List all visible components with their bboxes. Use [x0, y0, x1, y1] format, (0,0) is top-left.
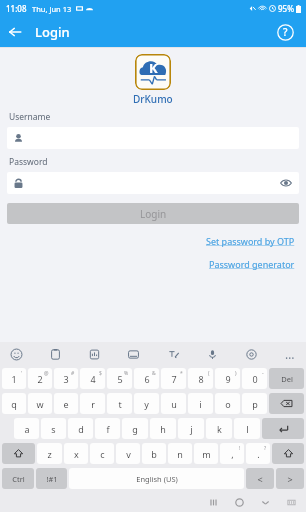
button[interactable]: 3 — [54, 368, 78, 389]
button[interactable]: < — [246, 468, 274, 489]
button[interactable]: d — [68, 418, 93, 439]
staticText: 5 — [117, 373, 123, 385]
button[interactable]: Ctrl — [2, 468, 34, 489]
button[interactable]: h — [150, 418, 176, 439]
staticText: r — [91, 398, 95, 410]
staticText: i — [199, 398, 202, 410]
staticText: # — [71, 370, 75, 377]
staticText: > — [287, 473, 293, 485]
button[interactable] — [262, 418, 304, 439]
button[interactable]: v — [116, 443, 140, 464]
button[interactable]: English (US) — [69, 468, 244, 489]
staticText: v — [126, 448, 131, 460]
staticText: % — [124, 370, 129, 377]
staticText: g — [132, 423, 138, 435]
button[interactable]: Hide keyboard — [252, 493, 278, 512]
staticText: 1 — [11, 373, 17, 385]
button[interactable]: r — [80, 393, 105, 414]
button[interactable]: Set password by OTP — [204, 233, 297, 249]
staticText: t — [118, 398, 122, 410]
button[interactable] — [7, 127, 299, 149]
button[interactable]: Voice input — [204, 346, 220, 362]
button[interactable]: i — [188, 393, 213, 414]
button[interactable]: x — [64, 443, 88, 464]
button[interactable]: Keyboard — [278, 493, 304, 512]
button[interactable]: 6 — [134, 368, 159, 389]
button[interactable]: l — [234, 418, 260, 439]
button[interactable]: Emoji — [8, 346, 24, 362]
button[interactable]: Del — [269, 368, 304, 389]
staticText: 6 — [144, 373, 150, 385]
button[interactable] — [269, 393, 304, 414]
staticText: 7 — [171, 373, 177, 385]
staticText: 3 — [63, 373, 69, 385]
button[interactable]: k — [206, 418, 232, 439]
button[interactable]: e — [54, 393, 78, 414]
staticText: $ — [99, 370, 102, 377]
button[interactable]: > — [276, 468, 304, 489]
button[interactable]: 8 — [188, 368, 213, 389]
button[interactable]: m — [194, 443, 218, 464]
staticText: o — [225, 398, 231, 410]
button[interactable]: t — [107, 393, 132, 414]
button[interactable] — [2, 443, 35, 464]
button[interactable] — [272, 443, 304, 464]
button[interactable]: Show password — [279, 176, 293, 190]
staticText: u — [171, 398, 177, 410]
staticText: x — [74, 448, 79, 460]
button[interactable]: w — [28, 393, 52, 414]
button[interactable]: u — [161, 393, 186, 414]
staticText: Username — [9, 111, 51, 123]
button[interactable]: GIF — [125, 346, 141, 362]
button[interactable]: 2 — [28, 368, 52, 389]
button[interactable]: !#1 — [36, 468, 67, 489]
button[interactable]: , — [220, 443, 244, 464]
button[interactable]: Help — [268, 17, 302, 47]
button[interactable]: z — [37, 443, 62, 464]
button[interactable]: Settings — [243, 346, 259, 362]
staticText: j — [190, 423, 193, 435]
staticText: English (US) — [136, 474, 178, 484]
button[interactable]: Home — [226, 493, 252, 512]
staticText: 0 — [252, 373, 258, 385]
button[interactable]: o — [215, 393, 240, 414]
staticText: y — [144, 398, 149, 410]
button[interactable]: Back — [0, 17, 30, 47]
button[interactable]: Sticker — [86, 346, 102, 362]
button[interactable]: Password generator — [207, 256, 297, 272]
button[interactable]: j — [178, 418, 204, 439]
button[interactable]: y — [134, 393, 159, 414]
button[interactable]: s — [41, 418, 66, 439]
button[interactable]: 9 — [215, 368, 240, 389]
staticText: Password — [9, 156, 48, 168]
button[interactable]: 7 — [161, 368, 186, 389]
button[interactable]: . — [246, 443, 270, 464]
button[interactable]: DrKumo logo — [135, 54, 171, 90]
staticText: ! — [239, 445, 241, 452]
staticText: m — [202, 448, 211, 460]
staticText: K — [149, 59, 158, 77]
button[interactable]: b — [142, 443, 166, 464]
staticText: e — [63, 398, 69, 410]
button[interactable]: a — [14, 418, 39, 439]
button[interactable]: 4 — [80, 368, 105, 389]
staticText: 8 — [198, 373, 204, 385]
button[interactable]: Recents — [200, 493, 226, 512]
button[interactable]: More — [282, 346, 298, 362]
button[interactable]: g — [122, 418, 148, 439]
button[interactable]: 0 — [242, 368, 267, 389]
button[interactable]: 1 — [2, 368, 26, 389]
staticText: ) — [235, 370, 237, 377]
button[interactable]: 5 — [107, 368, 132, 389]
staticText: f — [106, 423, 110, 435]
button[interactable]: Handwriting — [165, 346, 181, 362]
button[interactable]: f — [95, 418, 120, 439]
button[interactable]: n — [168, 443, 192, 464]
button[interactable]: q — [2, 393, 26, 414]
staticText: !#1 — [46, 474, 58, 484]
button[interactable]: Clipboard — [47, 346, 63, 362]
button[interactable]: Show password — [7, 172, 299, 194]
button[interactable]: p — [242, 393, 267, 414]
button[interactable]: c — [90, 443, 114, 464]
button[interactable]: Login — [7, 203, 299, 224]
